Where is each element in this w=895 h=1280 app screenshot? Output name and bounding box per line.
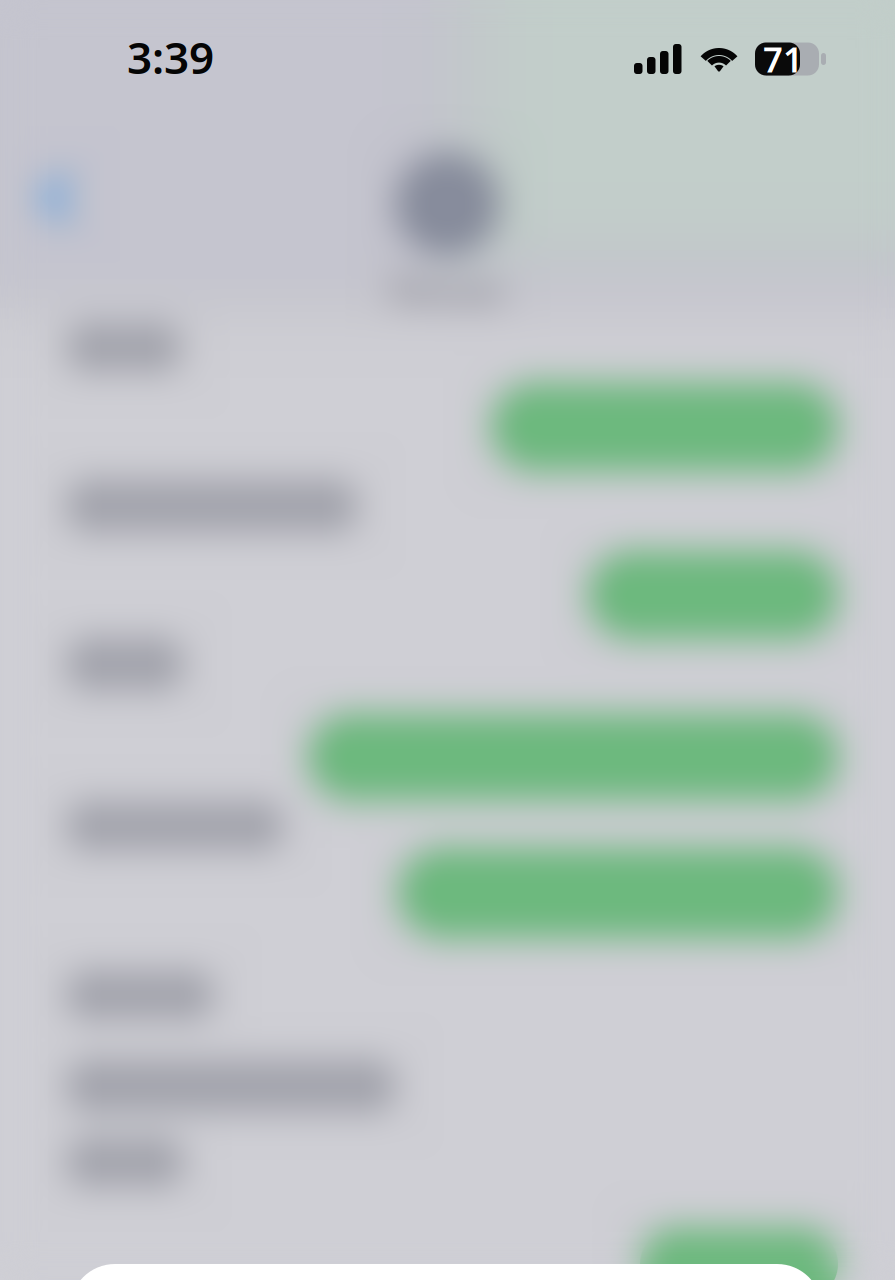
- button[interactable]: Back: [0, 0, 180, 300]
- staticText: 71: [763, 36, 803, 82]
- button[interactable]: Person: [0, 0, 895, 320]
- staticText: 3:39: [127, 28, 214, 86]
- staticText: Person: [390, 268, 504, 314]
